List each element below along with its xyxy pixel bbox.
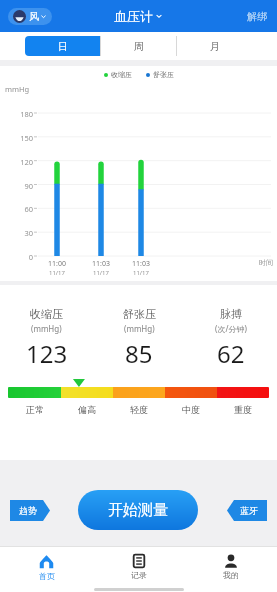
staticText: 时间 [259,258,273,267]
staticText: 收缩压 [111,70,132,79]
staticText: (mmHg) [124,323,155,334]
staticText: 0 [4,252,33,262]
staticText: 120 [4,157,33,167]
staticText: 蓝牙 [240,505,258,516]
staticText: 90 [4,181,33,191]
button[interactable]: 月 [177,36,252,56]
staticText: 趋势 [19,505,37,516]
staticText: 记录 [131,570,147,580]
staticText: 偏高 [78,404,96,415]
staticText: 收缩压 [30,307,63,321]
button[interactable]: 日 [25,36,100,56]
staticText: 11:03 [92,259,110,269]
staticText: 舒张压 [123,307,156,321]
staticText: (mmHg) [31,323,62,334]
button[interactable]: 周 [101,36,176,56]
staticText: 舒张压 [153,70,174,79]
staticText: 月 [210,40,220,53]
staticText: 62 [217,337,245,370]
button[interactable]: 血压计 [114,8,163,24]
button[interactable]: 脉搏 [185,307,277,370]
staticText: 血压计 [114,8,153,24]
staticText: 30 [4,228,33,238]
staticText: 中度 [182,404,200,415]
staticText: 11:03 [132,259,150,269]
staticText: 解绑 [247,10,267,23]
staticText: 重度 [234,404,252,415]
staticText: 60 [4,204,33,214]
button[interactable]: 我的 [185,547,277,587]
button[interactable]: 风 [8,8,52,25]
staticText: 123 [26,337,68,370]
staticText: 我的 [223,570,239,580]
staticText: 日 [58,40,68,53]
staticText: 开始测量 [108,501,168,520]
button[interactable]: 舒张压 [93,307,185,370]
staticText: 11/17 [133,269,149,277]
button[interactable]: 收缩压 [0,307,93,370]
staticText: 轻度 [130,404,148,415]
staticText: 11/17 [93,269,109,277]
staticText: 11/17 [49,269,65,277]
staticText: 周 [134,40,144,53]
button[interactable]: 首页 [0,547,93,587]
button[interactable]: 开始测量 [78,490,198,530]
staticText: 180 [4,109,33,119]
staticText: 首页 [39,571,55,581]
staticText: 11:00 [48,259,66,269]
button[interactable]: 蓝牙 [227,500,267,521]
button[interactable]: 解绑 [237,10,277,23]
staticText: mmHg [5,84,30,94]
button[interactable]: 记录 [93,547,185,587]
staticText: 正常 [26,404,44,415]
staticText: 脉搏 [220,307,242,321]
button[interactable]: 趋势 [10,500,50,521]
staticText: 150 [4,133,33,143]
staticText: 85 [125,337,153,370]
staticText: 风 [29,10,39,23]
staticText: (次/分钟) [215,323,247,334]
